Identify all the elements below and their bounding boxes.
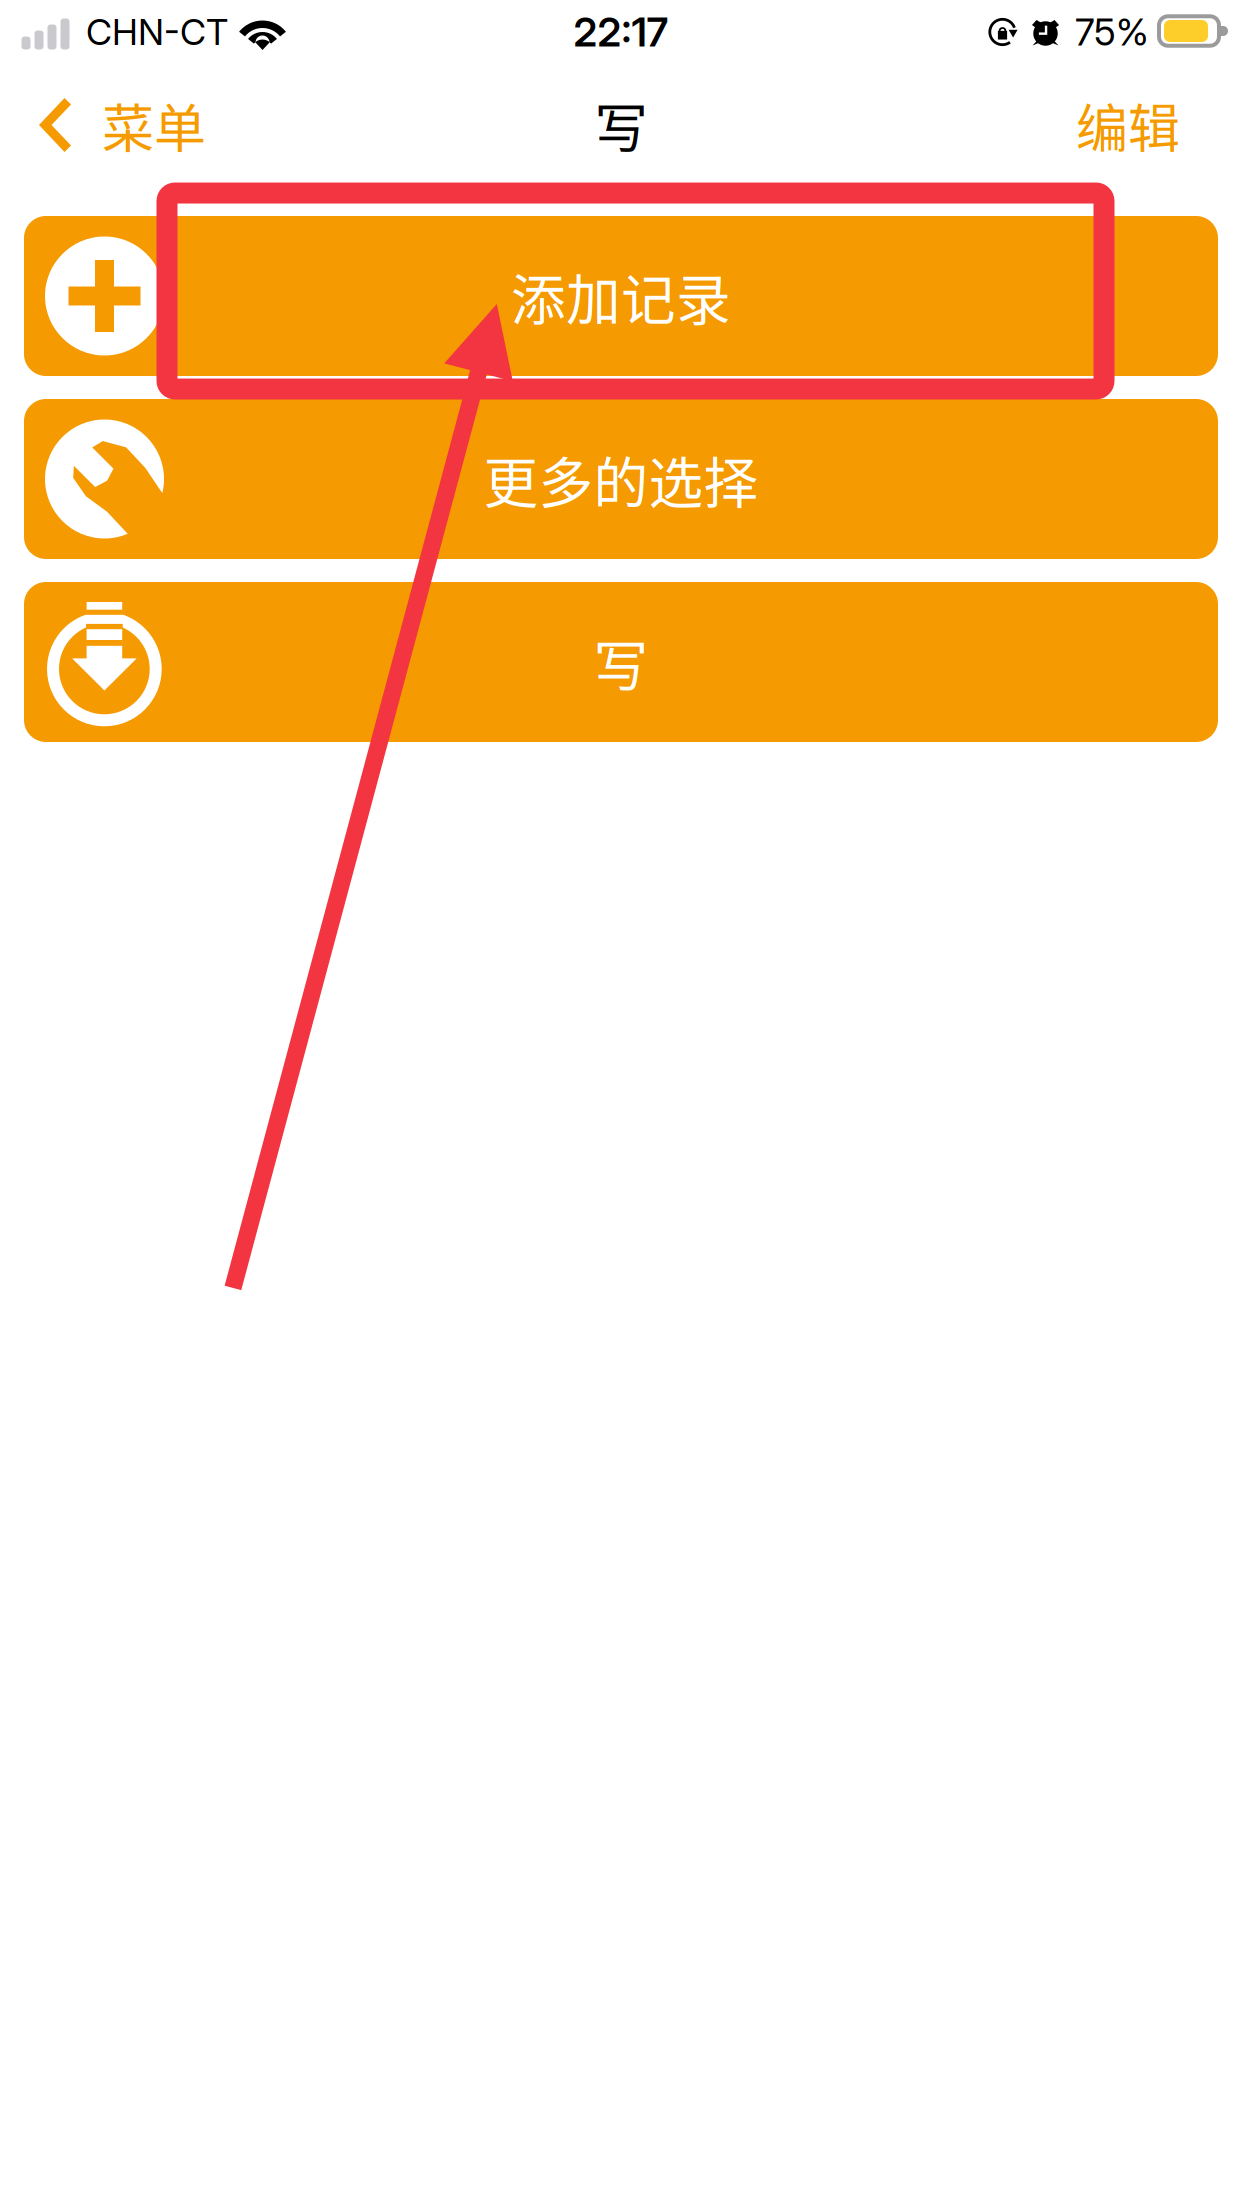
staticText: 编辑 (1076, 87, 1180, 163)
staticText: 写 (594, 86, 647, 164)
staticText: 添加记录 (511, 256, 731, 336)
staticText: 22:17 (573, 8, 668, 56)
staticText: 菜单 (102, 87, 206, 163)
button[interactable]: 更多的选择 (24, 399, 1218, 559)
button[interactable]: 菜单 (0, 73, 226, 177)
staticText: 更多的选择 (483, 439, 758, 519)
staticText: CHN-CT (86, 10, 228, 54)
button[interactable]: 写 (24, 582, 1218, 742)
staticText: 写 (593, 622, 648, 702)
button[interactable]: 添加记录 (24, 216, 1218, 376)
staticText: 75% (1075, 9, 1149, 55)
button[interactable]: 编辑 (1052, 73, 1242, 177)
